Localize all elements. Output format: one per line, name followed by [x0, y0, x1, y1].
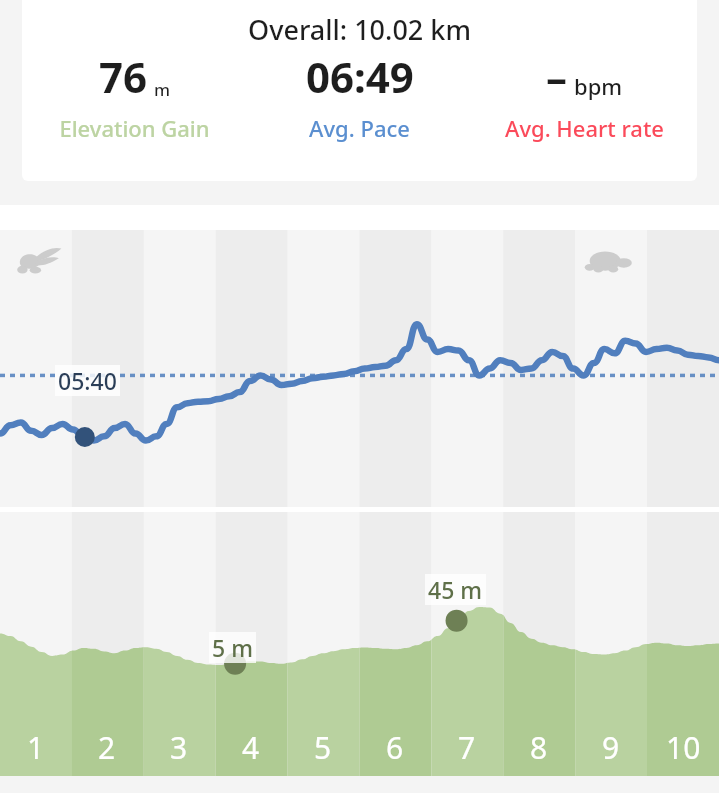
staticText: 10	[666, 727, 701, 768]
other: Slowest pace	[581, 238, 643, 286]
staticText: 2	[98, 727, 116, 768]
staticText: 8	[530, 727, 548, 768]
other: Fastest pace	[12, 238, 64, 286]
staticText: 45 m	[428, 574, 483, 605]
staticText: 7	[458, 727, 476, 768]
staticText: bpm	[574, 71, 623, 101]
staticText: 76	[99, 48, 148, 105]
staticText: 06:49	[306, 48, 414, 105]
staticText: 5	[314, 727, 332, 768]
staticText: Avg. Heart rate	[505, 113, 664, 143]
staticText: 5 m	[212, 632, 253, 663]
staticText: 9	[602, 727, 620, 768]
staticText: Avg. Pace	[309, 113, 410, 143]
staticText: 4	[242, 727, 260, 768]
button[interactable]: 76	[22, 48, 247, 143]
button[interactable]: Overall: 10.02 km	[22, 0, 697, 181]
staticText: 1	[27, 727, 45, 768]
staticText: –	[546, 48, 568, 105]
staticText: m	[154, 78, 171, 101]
button[interactable]: Fastest pace	[0, 230, 719, 507]
staticText: Overall: 10.02 km	[248, 11, 471, 48]
staticText: 6	[386, 727, 404, 768]
staticText: 05:40	[58, 365, 117, 396]
button[interactable]: 06:49	[247, 48, 472, 143]
staticText: 3	[170, 727, 188, 768]
staticText: Elevation Gain	[59, 113, 210, 143]
button[interactable]: –	[472, 48, 697, 143]
button[interactable]: 5 m	[0, 512, 719, 776]
